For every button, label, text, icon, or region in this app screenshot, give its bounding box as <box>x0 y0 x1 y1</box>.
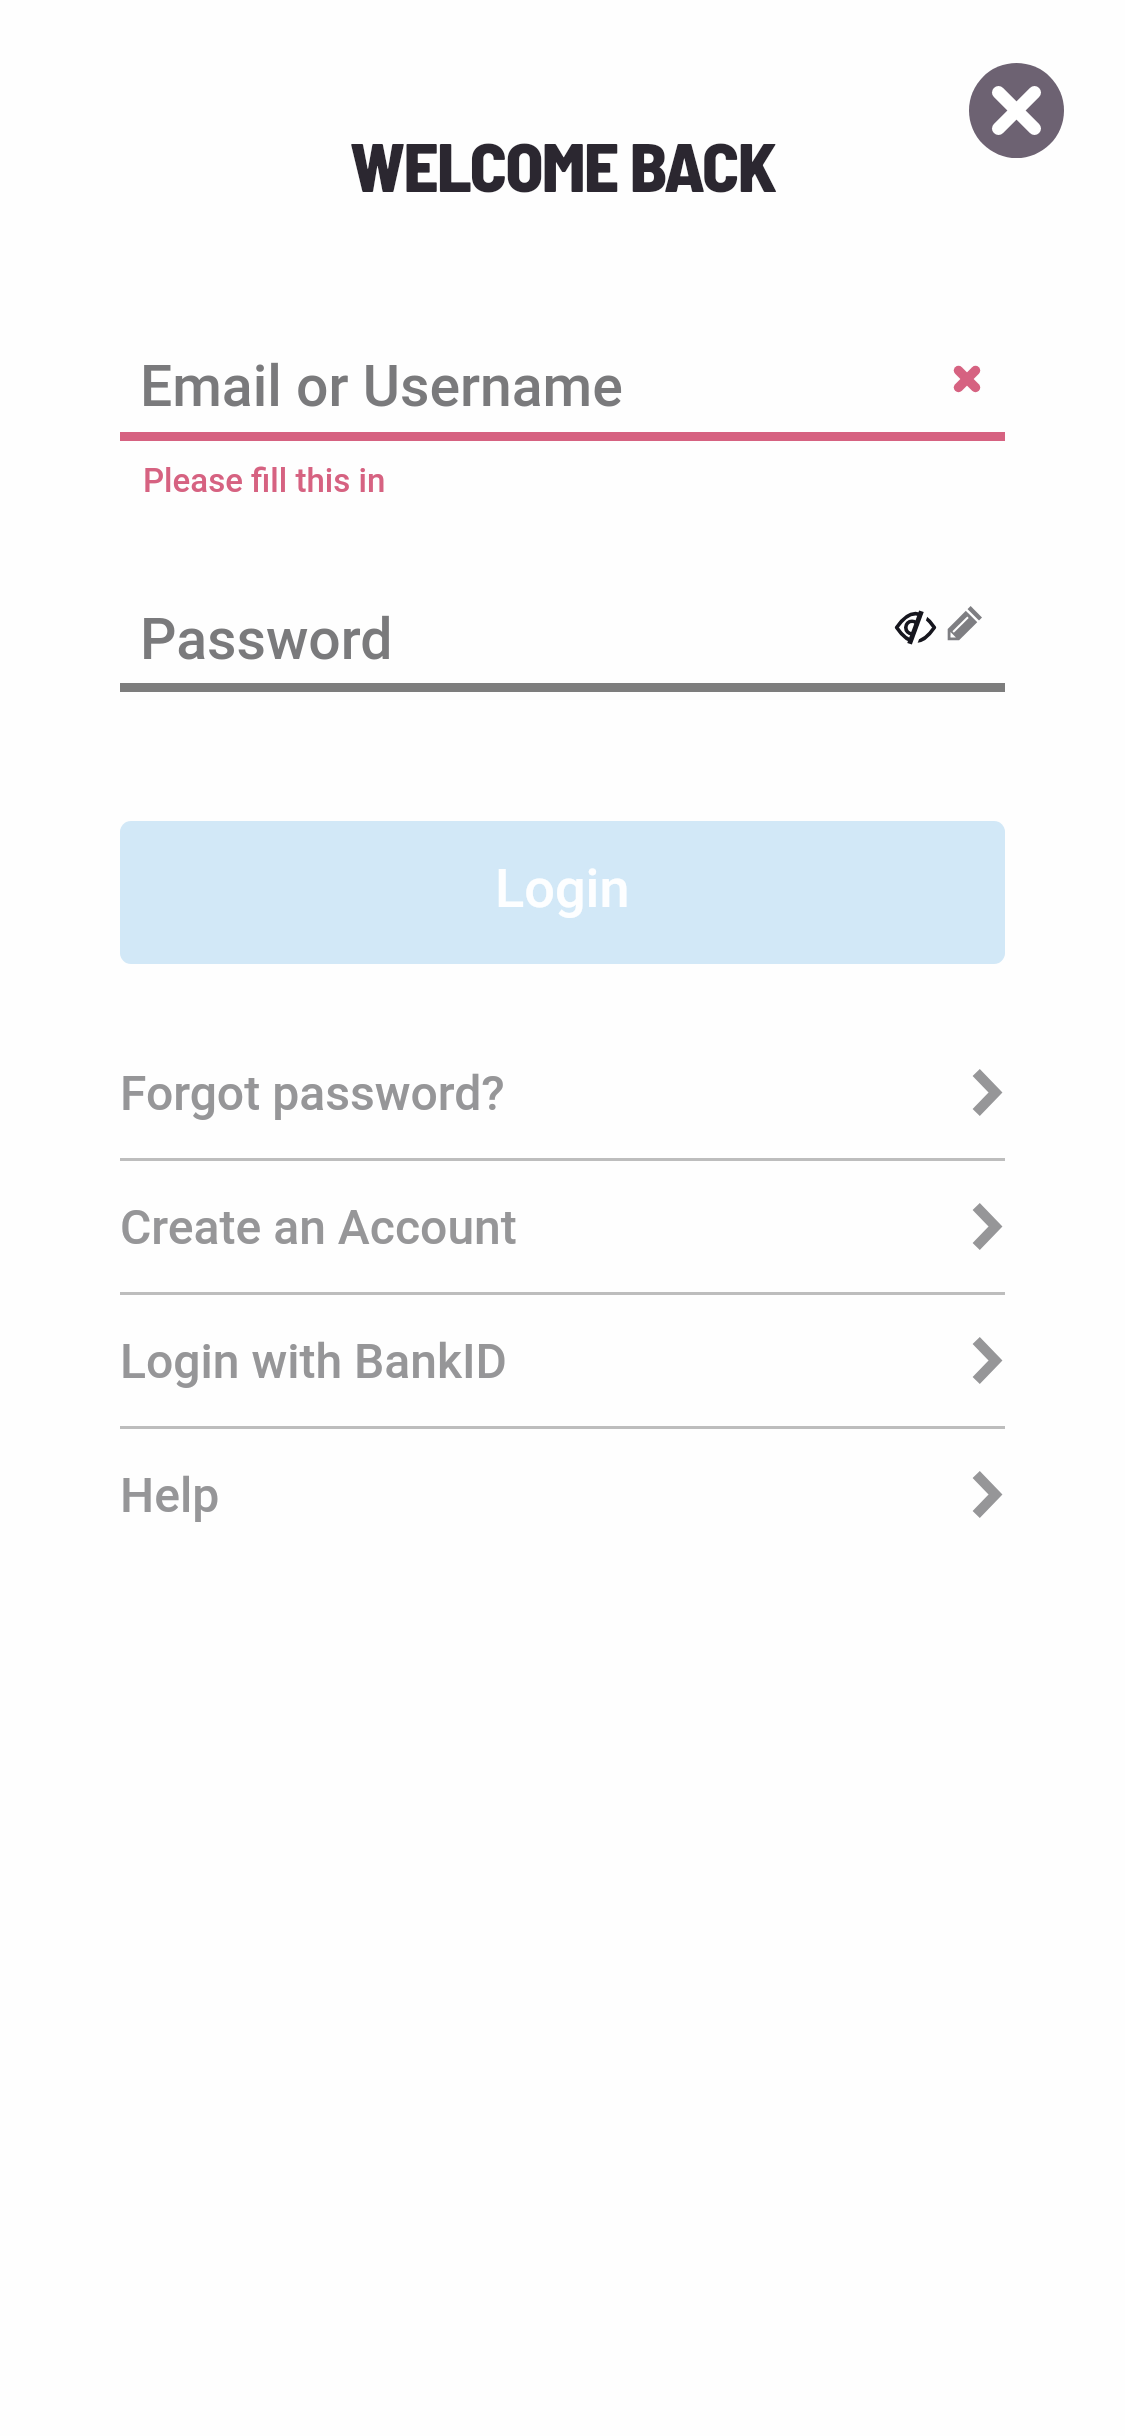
staticText: Create an Account <box>120 1199 976 1255</box>
button[interactable]: Help <box>120 1429 1005 1560</box>
staticText: Password <box>140 606 895 673</box>
staticText: Please fill this in <box>143 461 386 500</box>
button[interactable]: Login with BankID <box>120 1295 1005 1426</box>
button[interactable]: Edit <box>947 606 982 641</box>
staticText: Login <box>495 857 630 920</box>
button[interactable]: Login <box>120 821 1005 964</box>
button[interactable]: Clear text <box>935 347 999 411</box>
staticText: Email or Username <box>140 353 941 420</box>
button[interactable]: Create an Account <box>120 1161 1005 1292</box>
staticText: WELCOME BACK <box>0 123 1125 206</box>
button[interactable]: Show password <box>895 613 936 642</box>
staticText: Login with BankID <box>120 1333 976 1389</box>
button[interactable]: Forgot password? <box>120 1027 1005 1158</box>
staticText: Help <box>120 1467 976 1523</box>
button[interactable]: Close <box>969 63 1064 158</box>
staticText: Forgot password? <box>120 1065 976 1121</box>
